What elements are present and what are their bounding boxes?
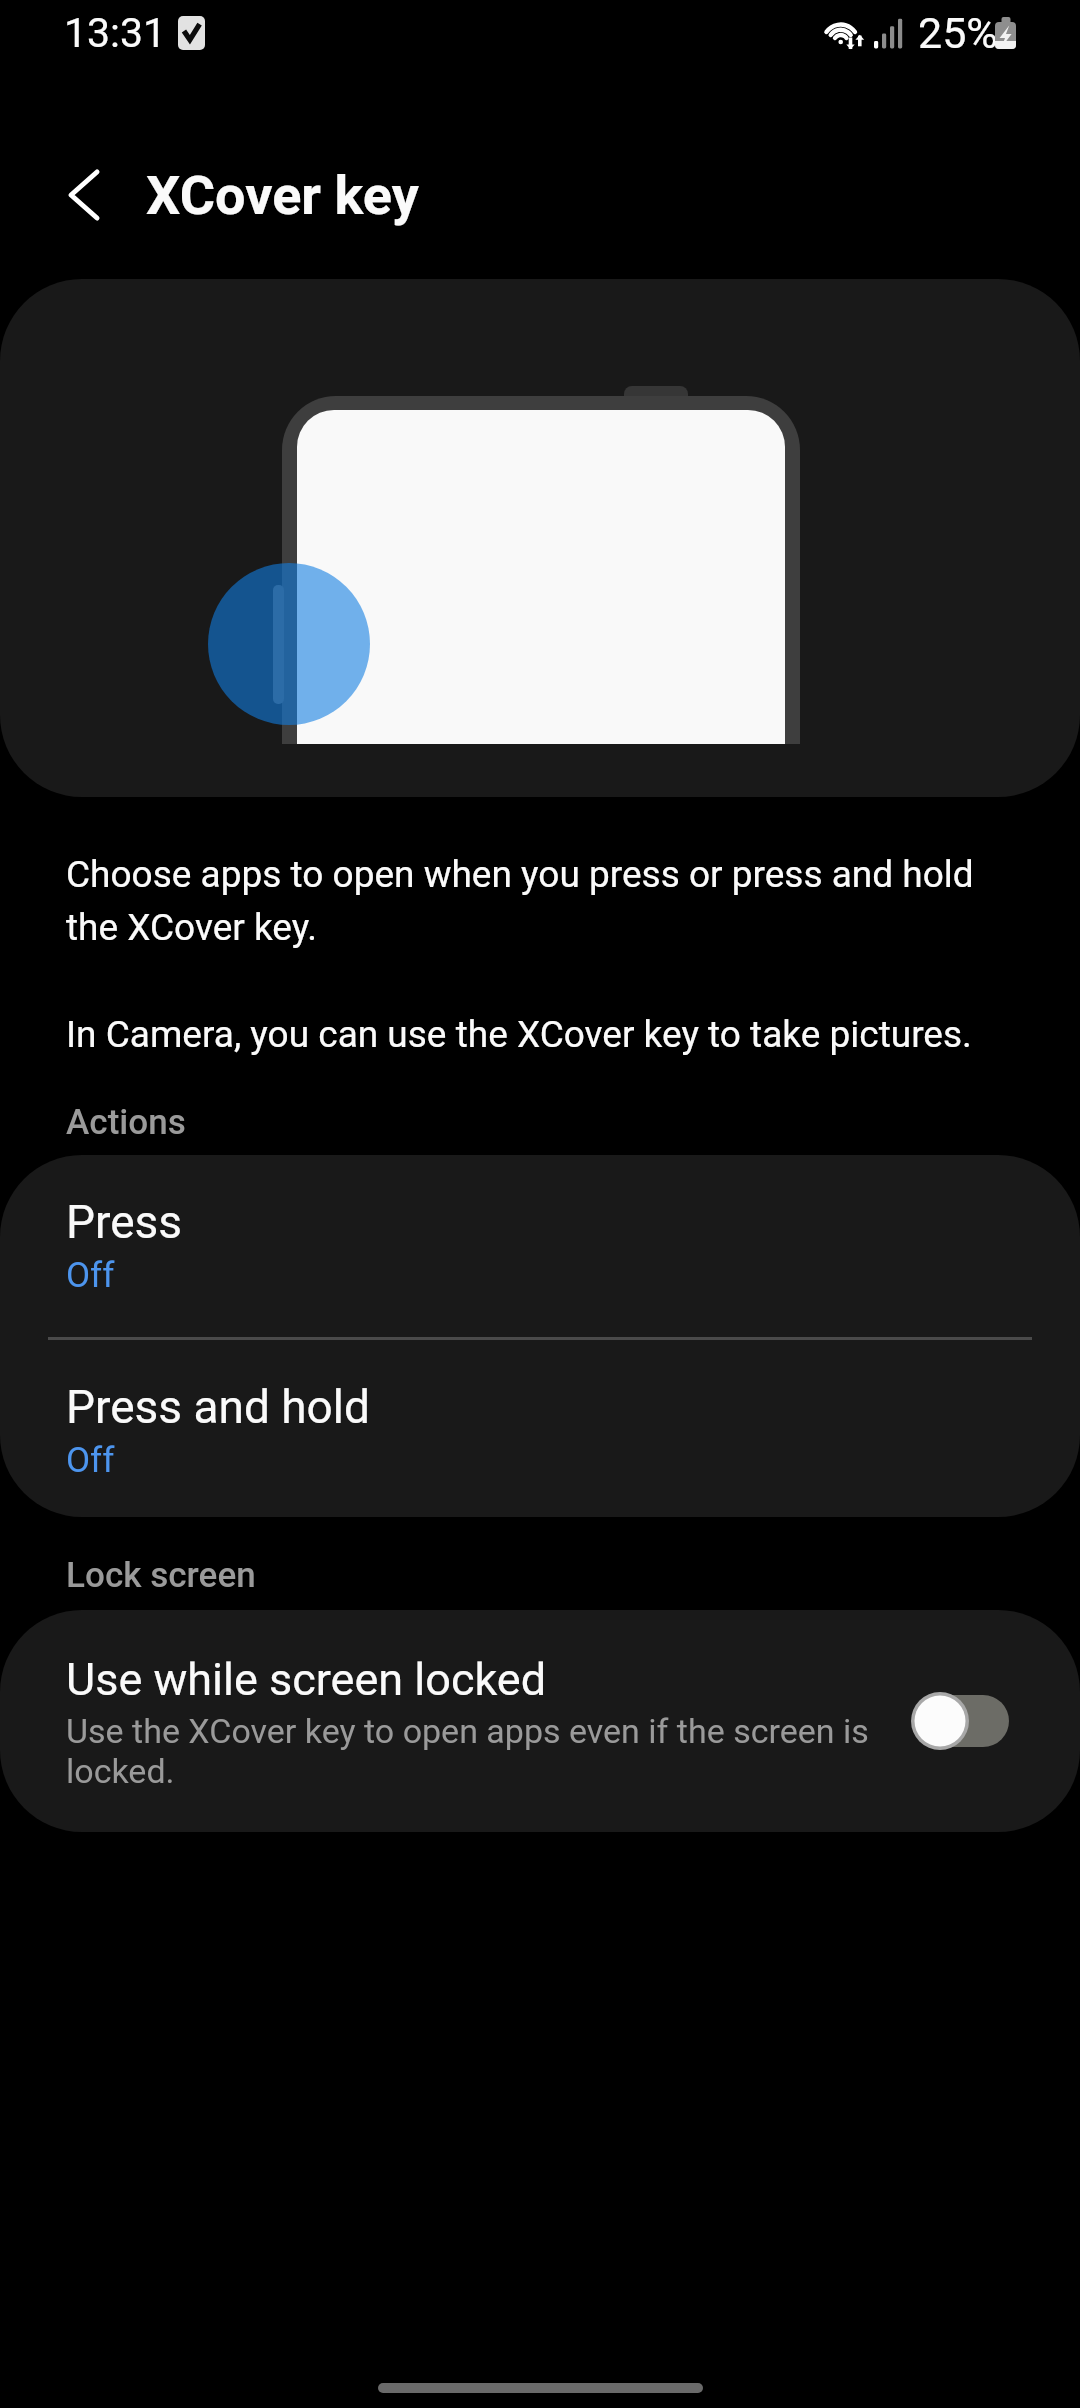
- button[interactable]: Press: [0, 1155, 1080, 1337]
- staticText: Press and hold: [66, 1380, 370, 1434]
- staticText: In Camera, you can use the XCover key to…: [66, 1005, 972, 1058]
- staticText: Actions: [66, 1102, 186, 1143]
- button[interactable]: Press and hold: [0, 1340, 1080, 1517]
- button[interactable]: Navigate up: [42, 153, 126, 237]
- staticText: XCover key: [146, 164, 419, 227]
- staticText: 13:31: [64, 9, 167, 57]
- staticText: Off: [66, 1255, 115, 1295]
- staticText: Use the XCover key to open apps even if …: [66, 1711, 906, 1791]
- button[interactable]: Use while screen locked: [0, 1610, 1080, 1832]
- button[interactable]: Use while screen locked: [912, 1694, 1010, 1748]
- staticText: Lock screen: [66, 1555, 256, 1596]
- staticText: Choose apps to open when you press or pr…: [66, 845, 1016, 951]
- staticText: Press: [66, 1195, 183, 1249]
- staticText: 25%: [918, 8, 998, 58]
- staticText: Off: [66, 1440, 115, 1480]
- staticText: Use while screen locked: [66, 1654, 547, 1706]
